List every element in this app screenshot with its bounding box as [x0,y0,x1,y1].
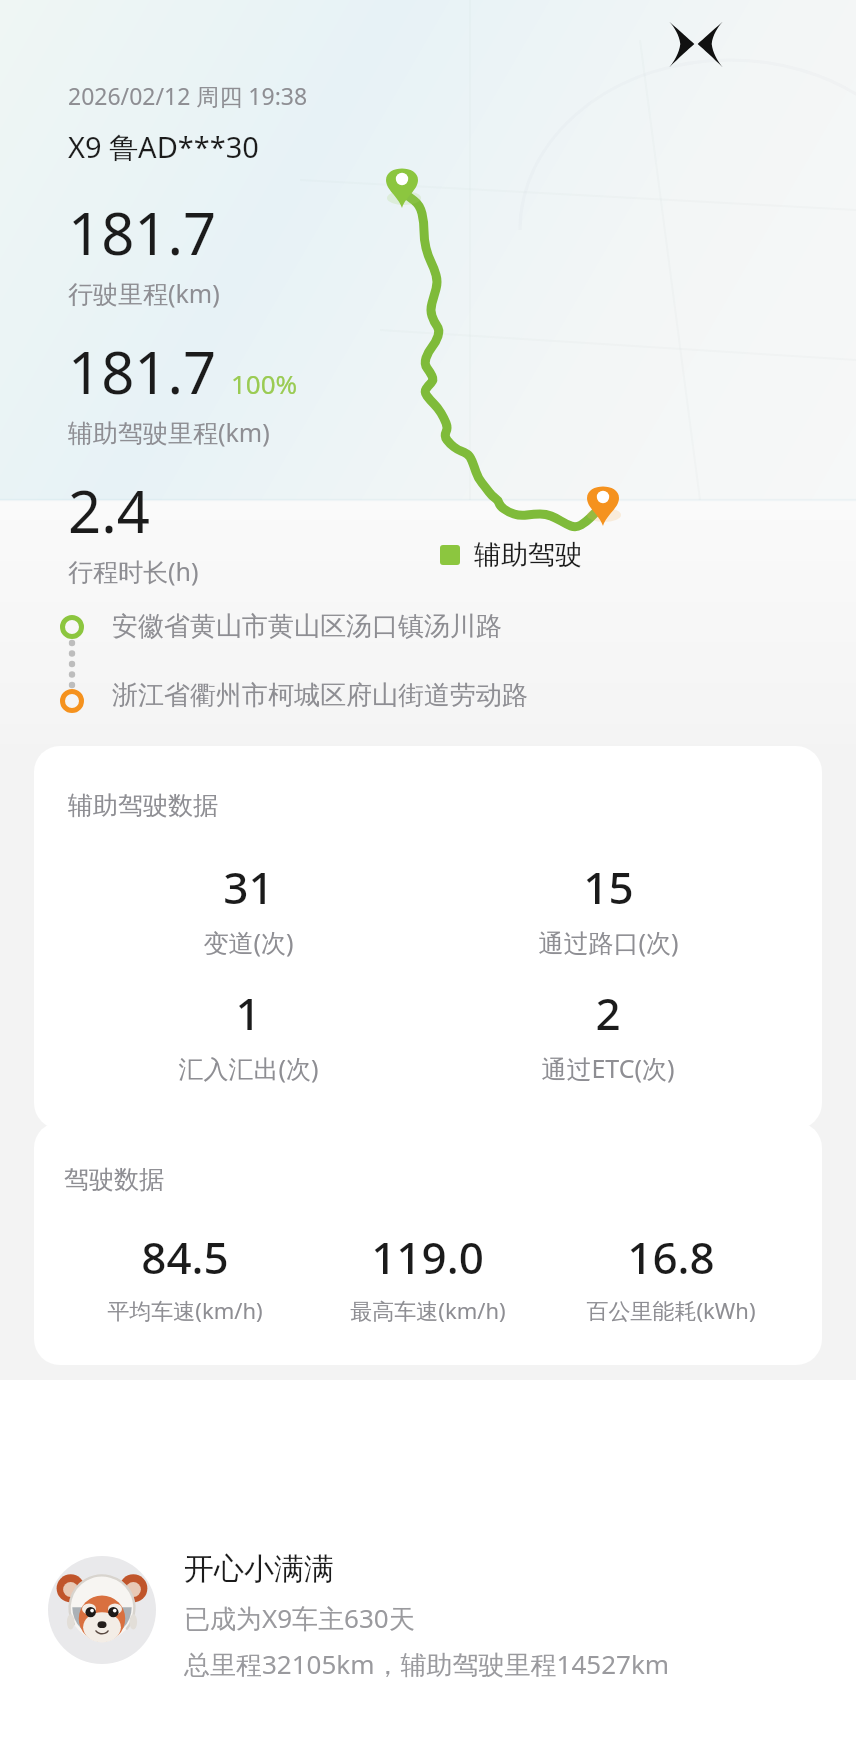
staticText: 变道(次) [203,925,294,959]
staticText: 辅助驾驶里程(km) [68,415,270,449]
staticText: 浙江省衢州市柯城区府山街道劳动路 [112,679,528,712]
staticText: 2.4 [68,471,150,550]
button[interactable]: 辅助驾驶数据 [34,746,822,1129]
staticText: 辅助驾驶 [474,538,582,572]
staticText: X9 鲁AD***30 [68,127,259,167]
staticText: 通过路口(次) [538,925,679,959]
staticText: 181.7 [68,193,217,272]
staticText: 安徽省黄山市黄山区汤口镇汤川路 [112,610,502,643]
staticText: 2026/02/12 周四 19:38 [68,80,308,111]
staticText: 100% [231,366,298,401]
staticText: 开心小满满 [184,1550,334,1588]
staticText: 1 [235,983,261,1043]
staticText: 通过ETC(次) [541,1051,675,1085]
staticText: 平均车速(km/h) [107,1295,263,1325]
staticText: 驾驶数据 [64,1164,164,1195]
staticText: 汇入汇出(次) [178,1051,319,1085]
staticText: 百公里能耗(kWh) [586,1295,756,1325]
staticText: 16.8 [627,1227,715,1287]
button[interactable]: 开心小满满 [0,1556,856,1688]
staticText: 181.7 [68,332,217,411]
staticText: 行驶里程(km) [68,276,220,310]
staticText: 84.5 [141,1227,229,1287]
staticText: 31 [223,857,274,917]
staticText: 辅助驾驶数据 [68,790,218,821]
button[interactable]: 驾驶数据 [34,1122,822,1365]
staticText: 119.0 [371,1227,484,1287]
staticText: 15 [583,857,634,917]
staticText: 已成为X9车主630天 [184,1600,415,1636]
staticText: 最高车速(km/h) [350,1295,506,1325]
staticText: 2 [595,983,621,1043]
button[interactable]: XPeng logo [660,8,732,80]
staticText: 行程时长(h) [68,554,199,588]
staticText: 总里程32105km，辅助驾驶里程14527km [184,1646,670,1682]
